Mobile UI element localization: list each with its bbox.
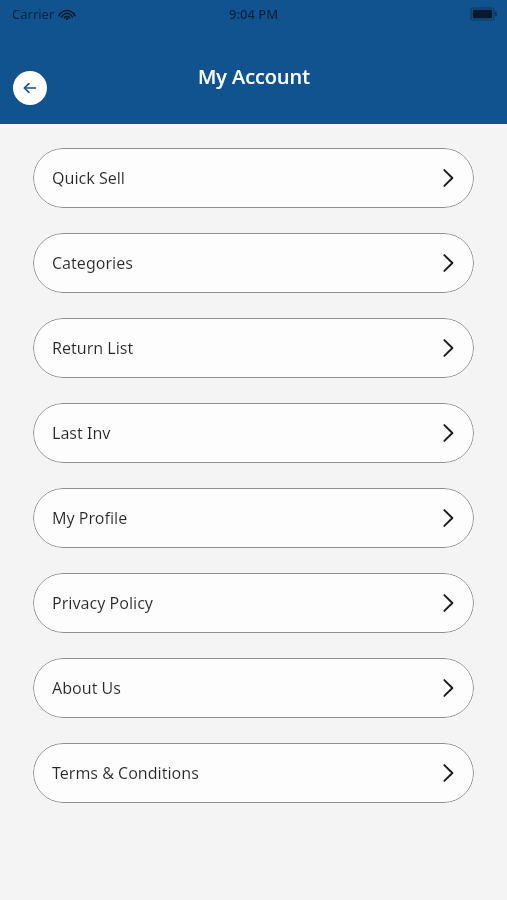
staticText: My Profile xyxy=(52,507,128,529)
button[interactable]: Terms & Conditions xyxy=(33,743,474,803)
button[interactable]: Last Inv xyxy=(33,403,474,463)
button[interactable]: Categories xyxy=(33,233,474,293)
staticText: Return List xyxy=(52,337,134,359)
button[interactable]: Quick Sell xyxy=(33,148,474,208)
button[interactable]: My Profile xyxy=(33,488,474,548)
staticText: Categories xyxy=(52,252,133,274)
staticText: Terms & Conditions xyxy=(52,762,199,784)
staticText: Quick Sell xyxy=(52,167,125,189)
staticText: Last Inv xyxy=(52,422,111,444)
button[interactable]: Privacy Policy xyxy=(33,573,474,633)
staticText: About Us xyxy=(52,677,121,699)
staticText: My Account xyxy=(198,63,310,90)
button[interactable]: Return List xyxy=(33,318,474,378)
button[interactable]: Back xyxy=(13,71,47,105)
staticText: 9:04 PM xyxy=(229,5,279,23)
staticText: Carrier xyxy=(12,5,55,23)
button[interactable]: About Us xyxy=(33,658,474,718)
staticText: Privacy Policy xyxy=(52,592,153,614)
